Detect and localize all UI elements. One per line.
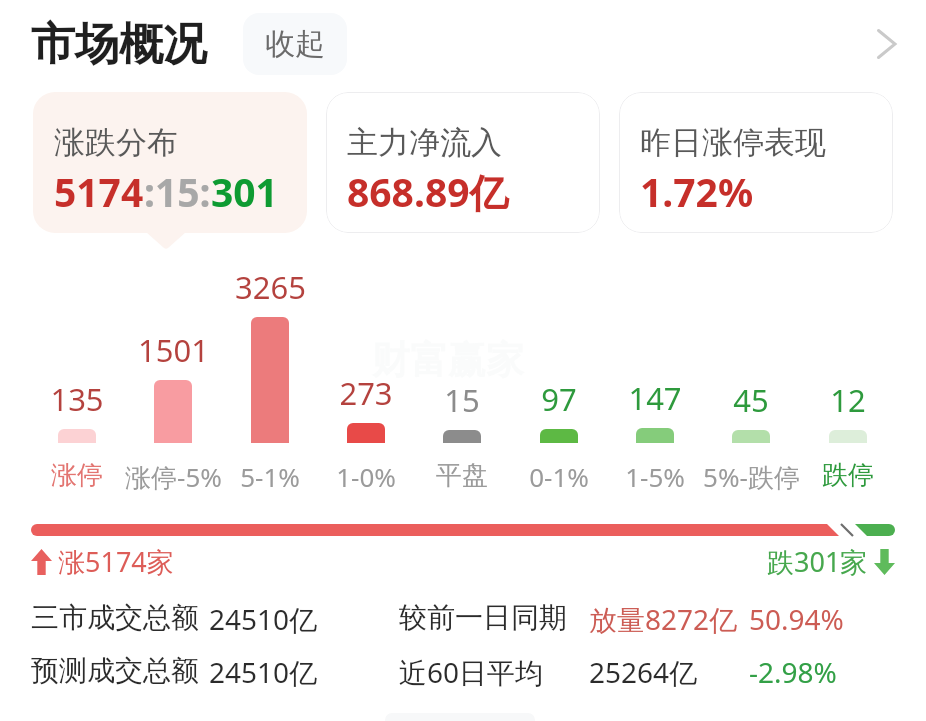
staticText: 主力净流入	[347, 123, 502, 162]
staticText: 三市成交总额	[31, 600, 199, 635]
staticText: 5-1%	[240, 459, 300, 494]
staticText: 24510亿	[209, 653, 318, 691]
staticText: 较前一日同期	[399, 600, 567, 635]
staticText: 近60日平均	[399, 653, 544, 691]
button[interactable]: 跌停 12	[801, 260, 895, 486]
staticText: 1501	[138, 329, 209, 371]
button[interactable]: 涨跌分布	[33, 92, 307, 233]
staticText: 市场概况	[31, 17, 207, 72]
staticText: 1.72%	[640, 165, 754, 218]
staticText: 147	[628, 377, 682, 419]
staticText: 15	[444, 379, 480, 421]
staticText: 12	[830, 379, 866, 421]
staticText: 涨跌分布	[54, 123, 178, 162]
staticText: 273	[339, 372, 393, 414]
button[interactable]: 涨停-5% 1501	[126, 260, 220, 486]
staticText: 跌301家	[767, 543, 868, 580]
staticText: 1-5%	[625, 459, 685, 494]
button[interactable]: 平盘 15	[415, 260, 509, 486]
staticText: 昨日涨停表现	[640, 123, 826, 162]
staticText: -2.98%	[749, 653, 837, 691]
staticText: 跌停	[822, 459, 874, 492]
staticText: 45	[733, 379, 769, 421]
button[interactable]: 0-1% 97	[512, 260, 606, 486]
staticText: 涨停	[51, 459, 103, 492]
staticText: 涨停-5%	[125, 459, 222, 495]
staticText: 135	[50, 378, 104, 420]
staticText: :15:	[144, 165, 211, 218]
staticText: 1-0%	[336, 459, 396, 494]
button[interactable]: 5-1% 3265	[223, 260, 317, 486]
button[interactable]: 5%-跌停 45	[704, 260, 798, 486]
button[interactable]: 涨停 135	[30, 260, 124, 486]
staticText: 涨5174家	[58, 543, 174, 580]
button[interactable]: 展开更多	[860, 17, 914, 71]
staticText: 0-1%	[529, 459, 589, 494]
staticText: 25264亿	[589, 653, 698, 691]
button[interactable]: 收起	[243, 13, 347, 75]
staticText: 5%-跌停	[703, 459, 800, 495]
staticText: 放量8272亿	[589, 600, 738, 638]
staticText: 平盘	[436, 459, 488, 492]
button[interactable]: 1-0% 273	[319, 260, 413, 486]
staticText: 301	[211, 165, 278, 218]
staticText: 财富赢家	[372, 336, 524, 384]
staticText: 5174	[54, 165, 144, 218]
button[interactable]: 昨日涨停表现	[619, 92, 893, 233]
staticText: 868.89亿	[347, 165, 509, 218]
staticText: 24510亿	[209, 600, 318, 638]
staticText: 50.94%	[749, 600, 844, 638]
staticText: 97	[541, 378, 577, 420]
staticText: 3265	[235, 266, 306, 308]
staticText: 预测成交总额	[31, 653, 199, 688]
button[interactable]: 主力净流入	[326, 92, 600, 233]
button[interactable]: 1-5% 147	[608, 260, 702, 486]
staticText: 收起	[265, 25, 325, 63]
